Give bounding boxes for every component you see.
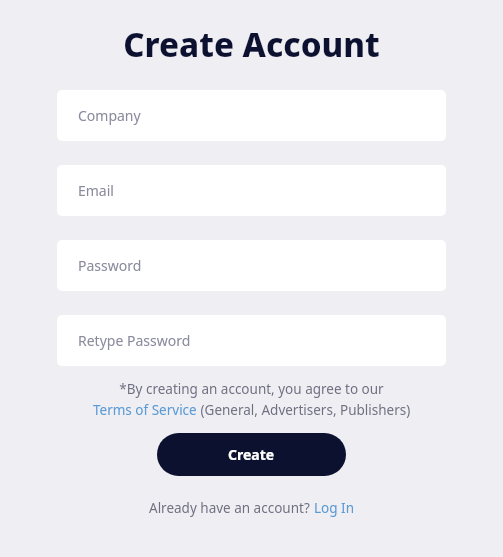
button[interactable]: Terms of Service bbox=[93, 401, 197, 419]
button[interactable]: Company bbox=[57, 90, 446, 141]
button[interactable]: Create bbox=[157, 433, 346, 476]
button[interactable]: Email bbox=[57, 165, 446, 216]
staticText: Retype Password bbox=[78, 331, 191, 350]
staticText: Company bbox=[78, 106, 141, 125]
staticText: Create bbox=[228, 445, 275, 464]
staticText: *By creating an account, you agree to ou… bbox=[119, 380, 384, 398]
staticText: (General, Advertisers, Publishers) bbox=[197, 401, 411, 419]
staticText: Email bbox=[78, 181, 114, 200]
button[interactable]: Retype Password bbox=[57, 315, 446, 366]
staticText: Log In bbox=[314, 499, 354, 517]
staticText: Password bbox=[78, 256, 142, 275]
staticText: Already have an account? bbox=[149, 499, 314, 517]
staticText: Create Account bbox=[123, 22, 380, 67]
staticText: Terms of Service bbox=[93, 401, 197, 419]
button[interactable]: Password bbox=[57, 240, 446, 291]
button[interactable]: Log In bbox=[314, 499, 354, 517]
